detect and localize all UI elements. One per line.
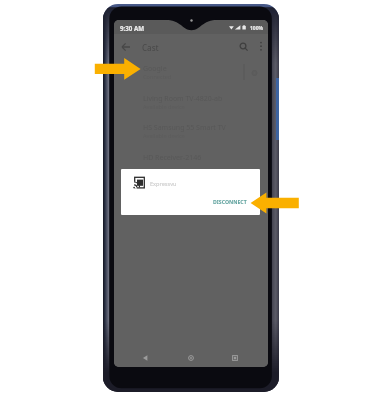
staticText: 9:30 AM bbox=[120, 24, 145, 32]
button[interactable]: Navigate up bbox=[118, 39, 134, 55]
button[interactable]: Back bbox=[140, 353, 150, 363]
button[interactable]: Recent apps bbox=[230, 353, 240, 363]
button[interactable]: HD Receiver-2146 bbox=[114, 153, 268, 183]
button[interactable]: DISCONNECT bbox=[208, 195, 252, 208]
staticText: 100% bbox=[250, 25, 264, 32]
staticText: Cast bbox=[142, 42, 159, 53]
staticText: Expressvu bbox=[150, 180, 177, 188]
button[interactable]: Google bbox=[114, 64, 268, 94]
button[interactable]: Home bbox=[186, 353, 196, 363]
staticText: DISCONNECT bbox=[213, 198, 247, 205]
button[interactable]: More options bbox=[255, 39, 267, 55]
button[interactable]: Search bbox=[236, 39, 252, 55]
